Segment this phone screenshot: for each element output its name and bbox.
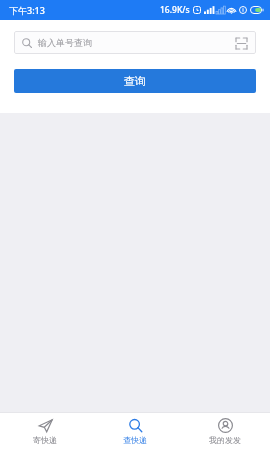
staticText: 输入单号查询 <box>38 37 234 48</box>
staticText: 16.9K/s <box>160 4 190 16</box>
staticText: 查询 <box>124 74 146 88</box>
button[interactable]: 查快递 <box>90 413 180 450</box>
button[interactable]: 输入单号查询 <box>14 31 256 54</box>
staticText: 下午3:13 <box>9 4 45 16</box>
button[interactable]: 寄快递 <box>0 413 90 450</box>
staticText: 查快递 <box>123 435 147 445</box>
staticText: 我的发发 <box>209 435 241 445</box>
staticText: 寄快递 <box>33 435 57 445</box>
button[interactable]: 查询 <box>14 69 256 93</box>
button[interactable]: 我的发发 <box>180 413 270 450</box>
button[interactable]: Scan barcode <box>234 36 248 50</box>
